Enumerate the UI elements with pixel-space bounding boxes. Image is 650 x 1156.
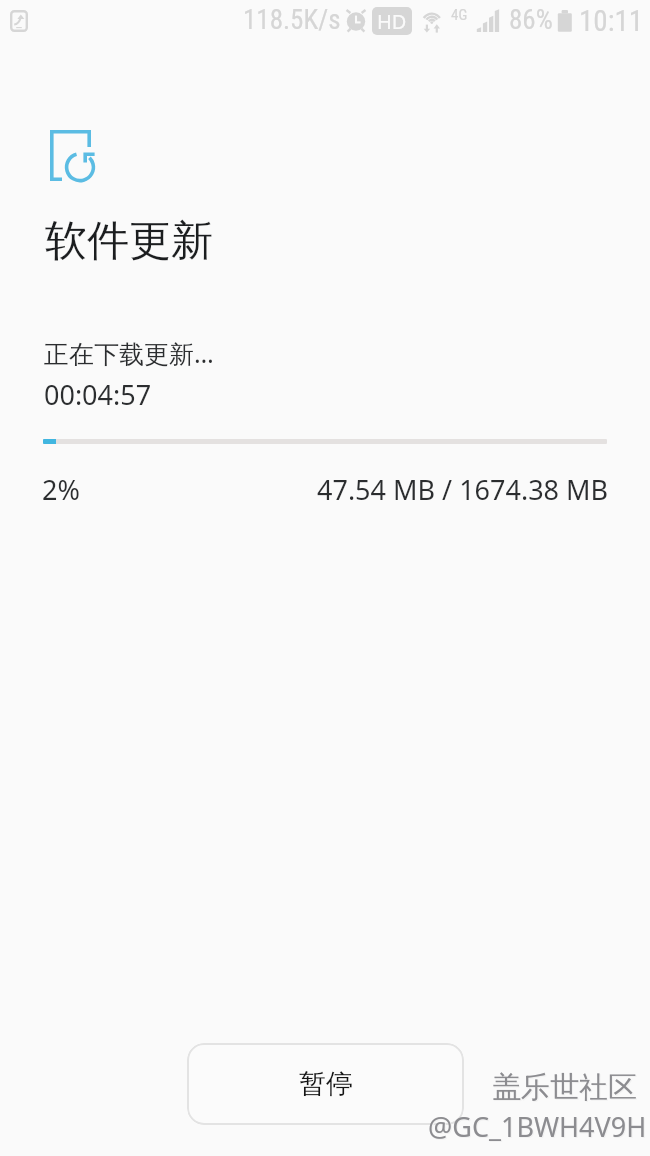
other: Signal strength xyxy=(476,9,501,33)
staticText: 118.5K/s xyxy=(243,4,341,36)
staticText: 软件更新 xyxy=(45,215,213,268)
other: Wi-Fi xyxy=(420,8,444,34)
staticText: 暂停 xyxy=(299,1067,353,1101)
staticText: 47.54 MB / 1674.38 MB xyxy=(317,471,609,508)
staticText: HD xyxy=(377,8,407,35)
other: Notification xyxy=(10,10,28,32)
button[interactable]: 暂停 xyxy=(187,1043,464,1125)
staticText: 86% xyxy=(509,4,553,36)
staticText: 00:04:57 xyxy=(44,376,152,413)
staticText: @GC_1BWH4V9H xyxy=(429,1109,648,1146)
staticText: 4G xyxy=(451,6,468,24)
other: Alarm set xyxy=(345,8,367,34)
staticText: 盖乐世社区 xyxy=(493,1070,638,1107)
staticText: 10:11 xyxy=(579,4,644,38)
staticText: 2% xyxy=(42,471,80,508)
other: Software update xyxy=(46,126,102,188)
staticText: 正在下载更新… xyxy=(44,336,214,370)
other: Battery 86 percent xyxy=(557,10,573,33)
staticText: 盖乐世社区 xyxy=(492,1069,637,1106)
staticText: @GC_1BWH4V9H xyxy=(428,1108,647,1145)
